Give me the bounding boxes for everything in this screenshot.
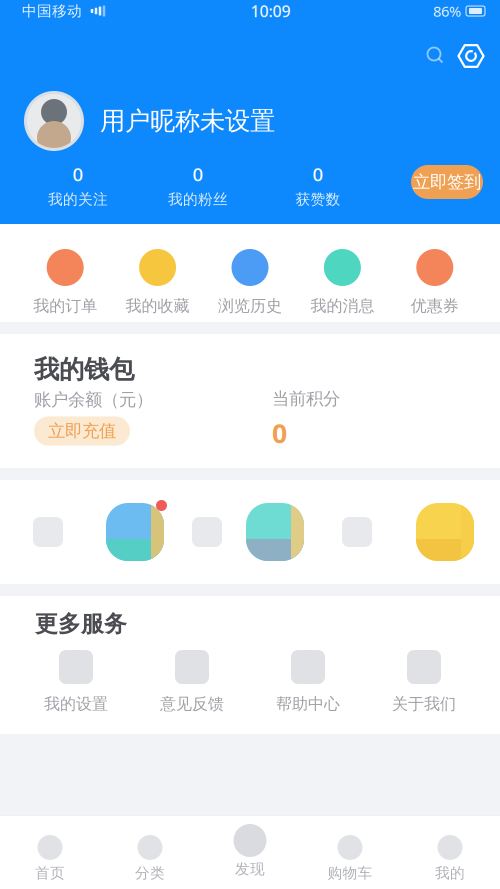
staticText: 立即签到: [413, 171, 481, 193]
staticText: 帮助中心: [276, 694, 340, 714]
staticText: 我的: [435, 864, 465, 882]
button[interactable]: 优惠券: [389, 224, 481, 322]
button[interactable]: 0: [138, 163, 258, 207]
button[interactable]: 关于我们: [366, 641, 482, 723]
staticText: 我的消息: [310, 296, 374, 316]
button[interactable]: 帮助中心: [250, 641, 366, 723]
staticText: 我的粉丝: [168, 190, 228, 208]
button[interactable]: Profile photo: [24, 91, 84, 151]
button[interactable]: 0: [18, 163, 138, 207]
staticText: 我的收藏: [126, 296, 190, 316]
staticText: 我的设置: [44, 694, 108, 714]
staticText: 更多服务: [35, 610, 127, 638]
staticText: 立即充值: [48, 420, 116, 442]
button[interactable]: More: [0, 480, 96, 584]
staticText: 0: [272, 415, 287, 451]
button[interactable]: 立即充值: [34, 416, 130, 446]
staticText: 获赞数: [295, 190, 340, 208]
staticText: 账户余额（元）: [34, 389, 153, 410]
button[interactable]: Promotion: [404, 480, 486, 584]
button[interactable]: More: [174, 480, 240, 584]
staticText: 分类: [135, 864, 165, 882]
button[interactable]: 分类: [100, 815, 200, 889]
button[interactable]: 意见反馈: [134, 641, 250, 723]
staticText: 我的订单: [33, 296, 97, 316]
staticText: 当前积分: [272, 388, 340, 409]
staticText: 优惠券: [411, 296, 459, 316]
staticText: 首页: [35, 864, 65, 882]
staticText: 发现: [235, 860, 265, 878]
button[interactable]: 我的设置: [18, 641, 134, 723]
button[interactable]: 我的: [400, 815, 500, 889]
staticText: 用户昵称未设置: [100, 105, 275, 136]
button[interactable]: Promotion: [96, 480, 174, 584]
staticText: 浏览历史: [218, 296, 282, 316]
staticText: 购物车: [327, 864, 372, 882]
button[interactable]: 我的消息: [296, 224, 389, 322]
staticText: 0: [192, 162, 203, 186]
staticText: 0: [312, 162, 323, 186]
button[interactable]: 浏览历史: [204, 224, 296, 322]
staticText: 意见反馈: [160, 694, 224, 714]
button[interactable]: 发现: [200, 815, 300, 889]
staticText: 我的钱包: [34, 354, 134, 385]
button[interactable]: Scan: [453, 38, 489, 74]
button[interactable]: Search: [417, 38, 453, 74]
button[interactable]: 我的订单: [19, 224, 111, 322]
staticText: 0: [72, 162, 83, 186]
staticText: 86%: [433, 1, 461, 21]
button[interactable]: 购物车: [300, 815, 400, 889]
staticText: 关于我们: [392, 694, 456, 714]
button[interactable]: 立即签到: [411, 165, 483, 199]
button[interactable]: 我的收藏: [111, 224, 204, 322]
staticText: 10:09: [250, 0, 290, 22]
button[interactable]: 首页: [0, 815, 100, 889]
staticText: 中国移动: [22, 2, 82, 20]
staticText: 我的关注: [48, 190, 108, 208]
button[interactable]: More: [310, 480, 404, 584]
button[interactable]: 0: [258, 163, 378, 207]
button[interactable]: Promotion: [240, 480, 310, 584]
